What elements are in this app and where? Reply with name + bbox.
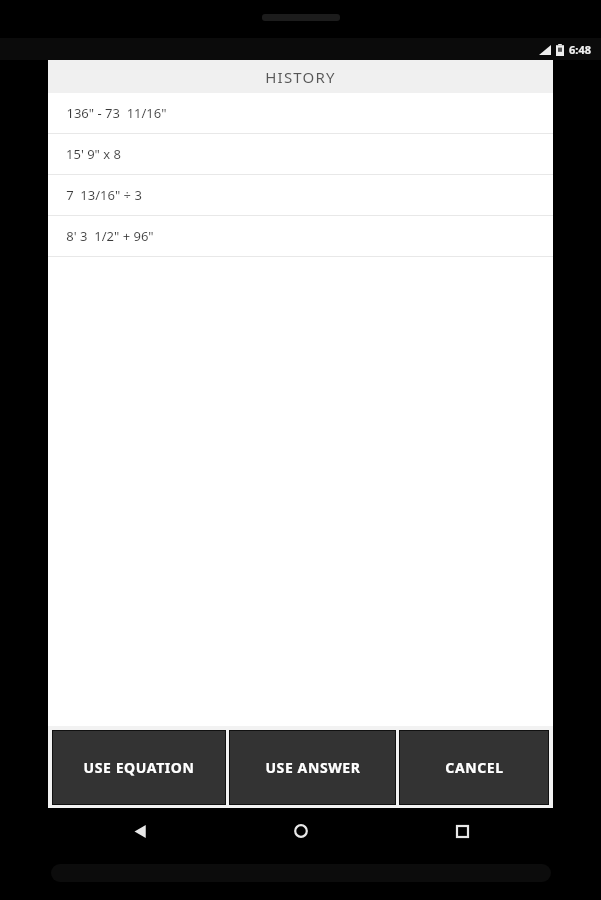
button[interactable]: Home <box>279 809 323 853</box>
staticText: 6:48 <box>569 42 591 57</box>
staticText: CANCEL <box>445 758 504 777</box>
button[interactable]: 15' 9" x 8 <box>48 134 553 175</box>
staticText: 7 13/16" ÷ 3 <box>66 186 142 204</box>
button[interactable]: 7 13/16" ÷ 3 <box>48 175 553 216</box>
staticText: 8' 3 1/2" + 96" <box>66 227 154 245</box>
button[interactable]: USE ANSWER <box>230 731 395 804</box>
staticText: 15' 9" x 8 <box>66 145 121 163</box>
button[interactable]: Recent apps <box>440 809 484 853</box>
staticText: USE ANSWER <box>265 758 361 777</box>
button[interactable]: CANCEL <box>400 731 548 804</box>
button[interactable]: Back <box>118 809 162 853</box>
button[interactable]: USE EQUATION <box>53 731 225 804</box>
button[interactable]: 136" - 73 11/16" <box>48 93 553 134</box>
staticText: USE EQUATION <box>83 758 195 777</box>
button[interactable]: 8' 3 1/2" + 96" <box>48 216 553 257</box>
staticText: HISTORY <box>265 67 336 87</box>
staticText: 136" - 73 11/16" <box>66 104 167 122</box>
